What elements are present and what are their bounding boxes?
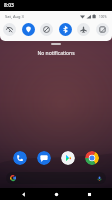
button[interactable]: Phone [13,151,27,165]
button[interactable]: Quick setting toggle [96,23,109,36]
button[interactable]: Recents [79,188,99,200]
button[interactable]: Quick setting toggle [77,23,90,36]
button[interactable]: Chrome [85,151,99,165]
staticText: 100% [99,15,107,19]
button[interactable]: Quick setting toggle [40,23,53,36]
button[interactable]: Play Store [61,151,75,165]
button[interactable]: Quick setting toggle [22,23,35,36]
button[interactable]: Messages [37,151,51,165]
button[interactable]: Home [46,188,66,200]
button[interactable]: Search [6,172,106,184]
staticText: Sat, Aug 3 [5,14,24,19]
button[interactable]: Back [13,188,33,200]
button[interactable]: Expand quick settings [0,41,112,46]
staticText: 8:03 [4,2,14,9]
button[interactable]: Quick setting toggle [59,23,72,36]
button[interactable]: Quick setting toggle [3,23,16,36]
staticText: No notifications [0,50,112,57]
